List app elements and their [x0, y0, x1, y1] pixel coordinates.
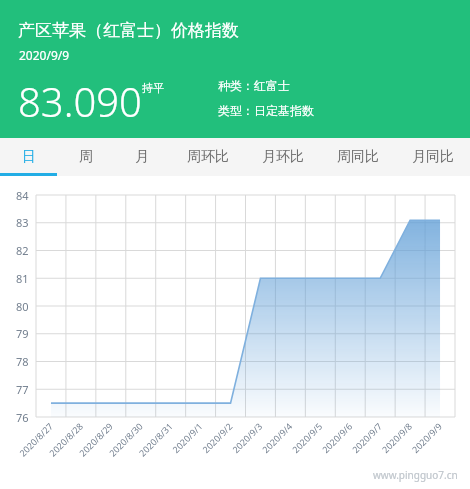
button[interactable]: 日 — [0, 138, 57, 176]
button[interactable]: 周同比 — [320, 138, 395, 176]
staticText: 月环比 — [262, 148, 304, 166]
button[interactable]: 月同比 — [395, 138, 470, 176]
staticText: 月同比 — [412, 148, 454, 166]
staticText: 类型：日定基指数 — [218, 103, 314, 118]
staticText: 持平 — [142, 81, 164, 95]
button[interactable]: 周 — [57, 138, 114, 176]
button[interactable]: 周环比 — [170, 138, 245, 176]
staticText: 2020/9/9 — [19, 47, 70, 63]
staticText: 周环比 — [187, 148, 229, 166]
staticText: 周同比 — [337, 148, 379, 166]
staticText: 83.090 — [18, 74, 142, 128]
staticText: 种类：红富士 — [218, 78, 290, 93]
button[interactable]: 月环比 — [245, 138, 320, 176]
button[interactable]: 月 — [114, 138, 170, 176]
staticText: 周 — [79, 148, 93, 166]
staticText: 日 — [22, 148, 36, 166]
staticText: 产区苹果（红富士）价格指数 — [18, 20, 239, 41]
staticText: 月 — [135, 148, 149, 166]
